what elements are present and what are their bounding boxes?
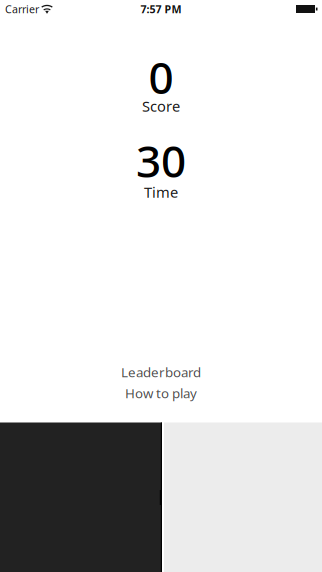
staticText: Score [142,96,180,116]
staticText: How to play [125,384,197,402]
button[interactable]: Leaderboard [96,362,226,382]
staticText: Carrier [5,2,39,16]
staticText: 0 [148,48,173,106]
button[interactable]: Left tile [0,422,162,572]
staticText: Time [144,182,178,202]
staticText: 7:57 PM [140,2,181,16]
staticText: 30 [136,131,186,190]
button[interactable]: How to play [96,383,226,403]
staticText: Leaderboard [121,363,201,381]
